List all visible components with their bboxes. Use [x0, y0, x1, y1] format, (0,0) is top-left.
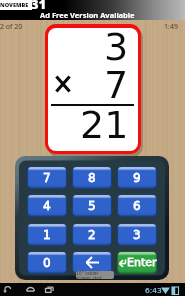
button[interactable]: 8: [72, 166, 112, 189]
button[interactable]: 0: [27, 251, 67, 274]
staticText: 5: [88, 199, 96, 213]
staticText: 9: [133, 171, 141, 185]
button[interactable]: NOVEMBER: [0, 0, 185, 20]
staticText: 21: [80, 103, 129, 147]
button[interactable]: Recent apps: [43, 283, 55, 296]
button[interactable]: 6: [117, 194, 157, 217]
staticText: 7: [104, 63, 129, 107]
staticText: 10" tablet screen shot: [76, 271, 114, 279]
staticText: 1: [43, 228, 51, 242]
button[interactable]: 9: [117, 166, 157, 189]
staticText: 2 of 20: [0, 22, 23, 32]
button[interactable]: Home: [24, 283, 36, 296]
button[interactable]: 3: [45, 24, 141, 154]
staticText: 0: [43, 256, 51, 270]
button[interactable]: Enter: [117, 251, 157, 274]
button[interactable]: Back: [1, 283, 13, 296]
button[interactable]: 1: [27, 223, 67, 246]
staticText: 1:49: [164, 22, 178, 32]
staticText: 3: [133, 228, 141, 242]
staticText: 31: [31, 0, 47, 13]
staticText: Ad Free Version Available: [40, 10, 135, 20]
staticText: 8: [88, 171, 96, 185]
staticText: 6: [133, 199, 141, 213]
staticText: 2: [88, 228, 96, 242]
staticText: NOVEMBER: [0, 1, 32, 9]
staticText: 6:43: [145, 286, 162, 295]
staticText: 7: [43, 171, 51, 185]
button[interactable]: Backspace: [72, 251, 112, 274]
staticText: 4: [43, 199, 51, 213]
button[interactable]: 4: [27, 194, 67, 217]
staticText: 3: [104, 28, 129, 69]
button[interactable]: 3: [117, 223, 157, 246]
button[interactable]: 5: [72, 194, 112, 217]
staticText: Enter: [127, 256, 157, 269]
button[interactable]: 2: [72, 223, 112, 246]
button[interactable]: 7: [27, 166, 67, 189]
